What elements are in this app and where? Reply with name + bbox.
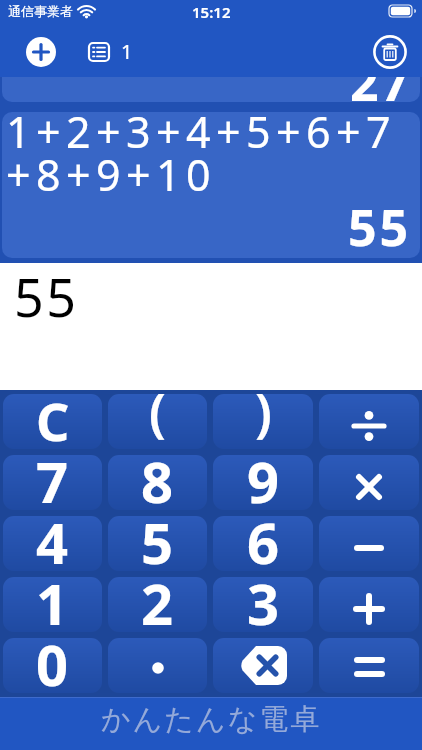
- staticText: 15:12: [192, 2, 231, 22]
- button[interactable]: 1+2+3+4+5+6+7: [2, 112, 420, 258]
- staticText: 0: [36, 638, 69, 693]
- staticText: ): [255, 394, 272, 447]
- staticText: +8+9+10: [6, 145, 216, 204]
- button[interactable]: [319, 577, 419, 632]
- button[interactable]: かんたんな電卓: [0, 697, 422, 750]
- button[interactable]: 2: [108, 577, 207, 632]
- button[interactable]: [319, 455, 419, 510]
- button[interactable]: 3: [213, 577, 313, 632]
- button[interactable]: [213, 638, 313, 693]
- button[interactable]: 6: [213, 516, 313, 571]
- staticText: 6: [247, 516, 280, 571]
- staticText: 55: [14, 261, 79, 332]
- button[interactable]: 8: [108, 455, 207, 510]
- button[interactable]: [319, 638, 419, 693]
- staticText: 1+2+3+4+5+6+7: [6, 112, 396, 161]
- button[interactable]: 7: [3, 455, 102, 510]
- staticText: (: [149, 394, 166, 447]
- staticText: 4: [36, 516, 69, 571]
- staticText: C: [36, 394, 70, 449]
- staticText: かんたんな電卓: [101, 701, 322, 738]
- staticText: 7: [36, 455, 69, 510]
- button[interactable]: [2, 77, 420, 102]
- button[interactable]: [373, 35, 407, 69]
- staticText: 55: [348, 193, 412, 258]
- button[interactable]: (: [108, 394, 207, 449]
- button[interactable]: ): [213, 394, 313, 449]
- button[interactable]: 1: [88, 38, 133, 65]
- button[interactable]: [26, 37, 56, 67]
- staticText: 1: [36, 577, 69, 632]
- staticText: 通信事業者: [8, 3, 73, 19]
- button[interactable]: [319, 394, 419, 449]
- button[interactable]: 0: [3, 638, 102, 693]
- button[interactable]: 1: [3, 577, 102, 632]
- staticText: 9: [247, 455, 280, 510]
- button[interactable]: [108, 638, 207, 693]
- button[interactable]: 5: [108, 516, 207, 571]
- button[interactable]: C: [3, 394, 102, 449]
- button[interactable]: 4: [3, 516, 102, 571]
- staticText: 2: [141, 577, 174, 632]
- staticText: 5: [141, 516, 174, 571]
- staticText: 27: [350, 77, 412, 116]
- staticText: 8: [141, 455, 174, 510]
- button[interactable]: [319, 516, 419, 571]
- staticText: 3: [247, 577, 280, 632]
- button[interactable]: 9: [213, 455, 313, 510]
- staticText: 1: [121, 38, 133, 65]
